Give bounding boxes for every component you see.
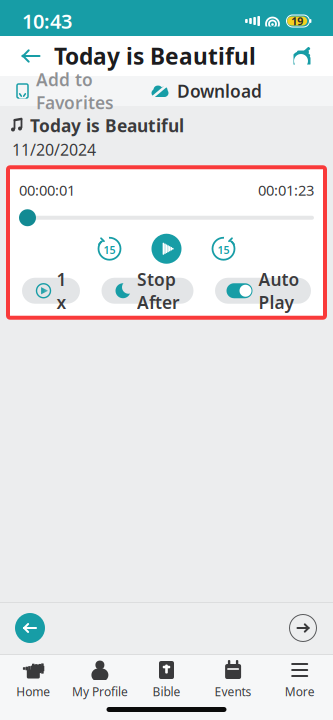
button[interactable]: Bible [133, 653, 200, 705]
staticText: 19 [291, 14, 303, 28]
staticText: Add to Favorites [36, 68, 114, 114]
staticText: Download [177, 79, 262, 102]
staticText: Bible [152, 683, 180, 699]
button[interactable]: Play [148, 231, 184, 267]
staticText: Auto Play [258, 268, 299, 314]
staticText: 15 [103, 243, 115, 257]
staticText: More [285, 683, 315, 699]
staticText: Home [16, 683, 50, 699]
staticText: 00:00:01 [19, 180, 75, 200]
button[interactable]: Next [283, 608, 323, 648]
staticText: 10:43 [22, 8, 72, 34]
staticText: Today is Beautiful [54, 41, 256, 71]
staticText: Today is Beautiful [30, 114, 184, 137]
button[interactable]: My Profile [67, 653, 133, 705]
staticText: 00:01:23 [258, 180, 314, 200]
staticText: 1x [56, 268, 66, 314]
button[interactable]: Events [200, 653, 266, 705]
staticText: Stop After [137, 268, 180, 314]
staticText: Events [215, 683, 252, 699]
button[interactable]: Skip forward 15 seconds [206, 232, 240, 266]
button[interactable]: Back [14, 39, 48, 73]
button[interactable]: More [266, 653, 333, 705]
staticText: 11/20/2024 [12, 139, 96, 160]
button[interactable]: Previous [10, 608, 50, 648]
staticText: My Profile [72, 683, 128, 699]
button[interactable]: Download [140, 73, 272, 108]
staticText: 15 [217, 243, 229, 257]
button[interactable]: Home [0, 653, 67, 705]
button[interactable]: Stop After [101, 278, 193, 304]
button[interactable]: Skip back 15 seconds [92, 232, 126, 266]
button[interactable]: 1x [22, 278, 80, 304]
button[interactable]: Share [285, 39, 319, 73]
button[interactable]: Auto Play [215, 278, 311, 304]
button[interactable]: Add to Favorites [6, 62, 124, 120]
